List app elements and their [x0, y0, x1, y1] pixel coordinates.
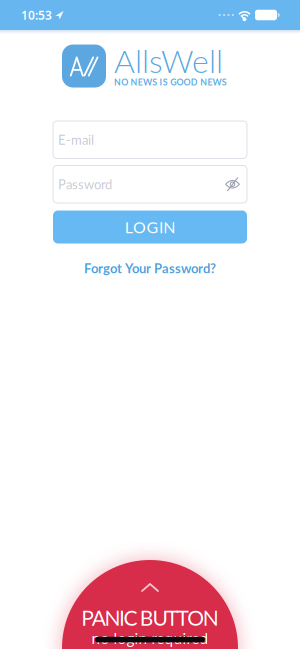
button[interactable]: Panic Button — no login required: [62, 560, 238, 649]
button[interactable]: LOGIN: [53, 210, 247, 243]
staticText: NO NEWS IS GOOD NEWS: [114, 77, 227, 87]
staticText: PANIC BUTTON: [81, 605, 219, 630]
staticText: E-mail: [58, 132, 94, 148]
staticText: Password: [58, 176, 112, 192]
staticText: LOGIN: [125, 217, 175, 237]
staticText: Forgot Your Password?: [84, 260, 216, 276]
staticText: 10:53: [21, 7, 52, 23]
button[interactable]: Forgot Your Password?: [84, 260, 216, 276]
staticText: AllsWell: [114, 41, 223, 80]
button[interactable]: Show password: [225, 177, 247, 191]
staticText: no login required: [91, 629, 208, 647]
